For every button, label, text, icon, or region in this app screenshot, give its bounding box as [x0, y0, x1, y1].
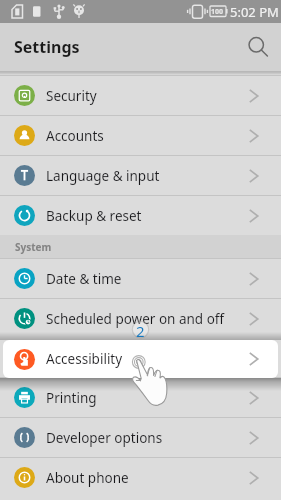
- button[interactable]: Backup & reset: [0, 196, 281, 235]
- staticText: Settings: [14, 36, 80, 58]
- button[interactable]: Security: [0, 76, 281, 115]
- button[interactable]: Search: [235, 24, 281, 70]
- staticText: Printing: [46, 389, 97, 407]
- button[interactable]: Language & input: [0, 156, 281, 195]
- staticText: Backup & reset: [46, 207, 142, 225]
- staticText: About phone: [46, 469, 129, 487]
- staticText: Scheduled power on and off: [46, 310, 225, 328]
- button[interactable]: Scheduled power on and off: [0, 299, 281, 338]
- button[interactable]: About phone: [0, 458, 281, 497]
- staticText: Security: [46, 87, 97, 105]
- staticText: Date & time: [46, 270, 122, 288]
- button[interactable]: Date & time: [0, 259, 281, 298]
- staticText: Accounts: [46, 127, 104, 145]
- button[interactable]: Printing: [0, 378, 281, 417]
- staticText: 2: [136, 321, 145, 338]
- staticText: Developer options: [46, 429, 163, 447]
- staticText: 5:02 PM: [230, 3, 279, 21]
- staticText: Language & input: [46, 167, 160, 185]
- staticText: System: [15, 240, 52, 254]
- staticText: 100: [211, 7, 224, 17]
- staticText: Accessibility: [46, 350, 123, 368]
- button[interactable]: Accessibility: [3, 340, 278, 378]
- button[interactable]: Developer options: [0, 418, 281, 457]
- button[interactable]: Accounts: [0, 116, 281, 155]
